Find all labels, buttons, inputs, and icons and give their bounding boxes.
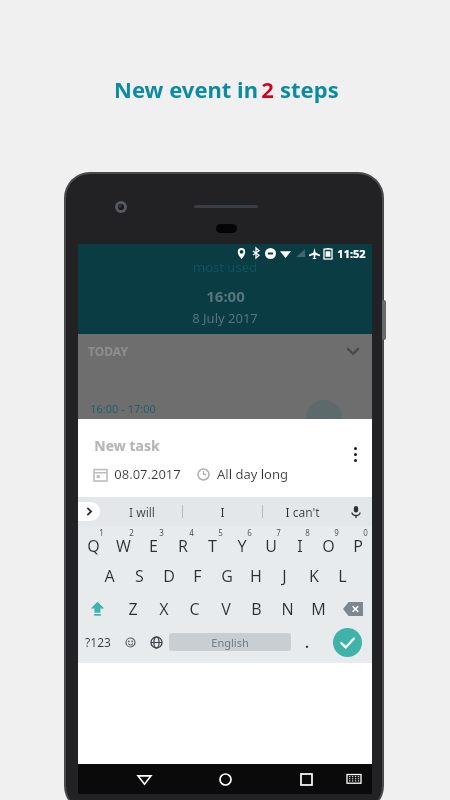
button[interactable]: Q <box>78 526 108 559</box>
staticText: L <box>338 565 347 587</box>
staticText: steps <box>274 74 339 104</box>
staticText: 6 <box>247 527 252 538</box>
staticText: T <box>208 535 217 557</box>
staticText: S <box>135 565 144 587</box>
staticText: 9 <box>334 527 339 538</box>
button[interactable]: O <box>314 526 343 559</box>
staticText: R <box>178 535 188 557</box>
button[interactable]: F <box>183 559 212 592</box>
staticText: C <box>189 598 200 620</box>
button[interactable]: Done <box>323 625 372 659</box>
button[interactable]: J <box>270 559 299 592</box>
button[interactable]: H <box>241 559 270 592</box>
staticText: 08.07.2017 <box>114 465 181 483</box>
button[interactable]: K <box>299 559 328 592</box>
button[interactable]: Voice input <box>348 504 364 520</box>
button[interactable]: X <box>148 592 179 625</box>
staticText: X <box>159 598 169 620</box>
staticText: 16:00 - 17:00 <box>90 401 156 416</box>
staticText: A <box>104 565 115 587</box>
staticText: I will <box>129 504 155 520</box>
staticText: D <box>163 565 175 587</box>
button[interactable]: Back <box>130 765 158 793</box>
button[interactable]: C <box>179 592 210 625</box>
button[interactable]: S <box>124 559 154 592</box>
staticText: Q <box>87 535 100 557</box>
staticText: K <box>309 565 319 587</box>
staticText: ?123 <box>85 634 111 650</box>
button[interactable]: R <box>168 526 198 559</box>
staticText: most used <box>193 258 257 276</box>
staticText: . <box>305 633 309 652</box>
staticText: M <box>311 598 326 620</box>
staticText: New task <box>94 436 160 455</box>
button[interactable]: D <box>154 559 183 592</box>
staticText: H <box>250 565 262 587</box>
button[interactable]: Emoji <box>117 625 143 659</box>
button[interactable]: U <box>256 526 285 559</box>
button[interactable]: Y <box>227 526 256 559</box>
staticText: 2 <box>129 527 134 538</box>
staticText: 8 July 2017 <box>192 309 258 327</box>
button[interactable]: Z <box>117 592 148 625</box>
staticText: Z <box>128 598 138 620</box>
staticText: B <box>251 598 262 620</box>
button[interactable]: English <box>169 633 291 651</box>
button[interactable]: I can't <box>263 497 342 526</box>
staticText: U <box>265 535 277 557</box>
staticText: I <box>220 504 225 520</box>
staticText: E <box>149 535 158 557</box>
staticText: 7 <box>276 527 281 538</box>
button[interactable]: T <box>198 526 227 559</box>
button[interactable]: I <box>183 497 262 526</box>
staticText: 0 <box>363 527 368 538</box>
button[interactable]: I <box>285 526 314 559</box>
button[interactable]: Shift <box>78 592 117 625</box>
button[interactable]: ?123 <box>78 625 117 659</box>
staticText: W <box>116 535 131 557</box>
button[interactable]: Hide keyboard <box>342 767 366 791</box>
staticText: F <box>193 565 202 587</box>
button[interactable]: . <box>291 625 323 659</box>
button[interactable]: Expand suggestions <box>78 502 100 521</box>
button[interactable]: E <box>138 526 168 559</box>
staticText: I <box>297 535 303 557</box>
staticText: 5 <box>218 527 223 538</box>
staticText: J <box>282 565 287 587</box>
staticText: 16:00 <box>206 286 245 306</box>
staticText: 11:52 <box>337 246 366 261</box>
button[interactable]: N <box>272 592 303 625</box>
button[interactable]: P <box>343 526 372 559</box>
staticText: V <box>221 598 231 620</box>
button[interactable]: M <box>303 592 334 625</box>
button[interactable]: W <box>108 526 138 559</box>
staticText: 3 <box>159 527 164 538</box>
button[interactable]: Backspace <box>334 592 372 625</box>
staticText: New event in <box>111 74 261 104</box>
staticText: N <box>281 598 294 620</box>
staticText: P <box>353 535 363 557</box>
button[interactable]: Home <box>211 765 239 793</box>
staticText: O <box>322 535 335 557</box>
staticText: TODAY <box>88 343 128 359</box>
staticText: English <box>211 635 249 650</box>
staticText: Y <box>237 535 247 557</box>
staticText: 1 <box>99 527 104 538</box>
button[interactable]: Collapse <box>344 342 362 360</box>
button[interactable]: I will <box>102 497 182 526</box>
staticText: 2 <box>261 74 274 104</box>
staticText: G <box>221 565 233 587</box>
button[interactable]: New task <box>78 419 372 497</box>
staticText: All day long <box>217 465 288 483</box>
button[interactable]: B <box>241 592 272 625</box>
staticText: I can't <box>285 504 320 520</box>
button[interactable]: G <box>212 559 241 592</box>
button[interactable]: More options <box>346 447 364 465</box>
staticText: 8 <box>305 527 310 538</box>
staticText: 4 <box>189 527 194 538</box>
button[interactable]: V <box>210 592 241 625</box>
button[interactable]: Change language <box>143 625 169 659</box>
button[interactable]: A <box>94 559 124 592</box>
button[interactable]: L <box>328 559 357 592</box>
button[interactable]: Recents <box>292 765 320 793</box>
